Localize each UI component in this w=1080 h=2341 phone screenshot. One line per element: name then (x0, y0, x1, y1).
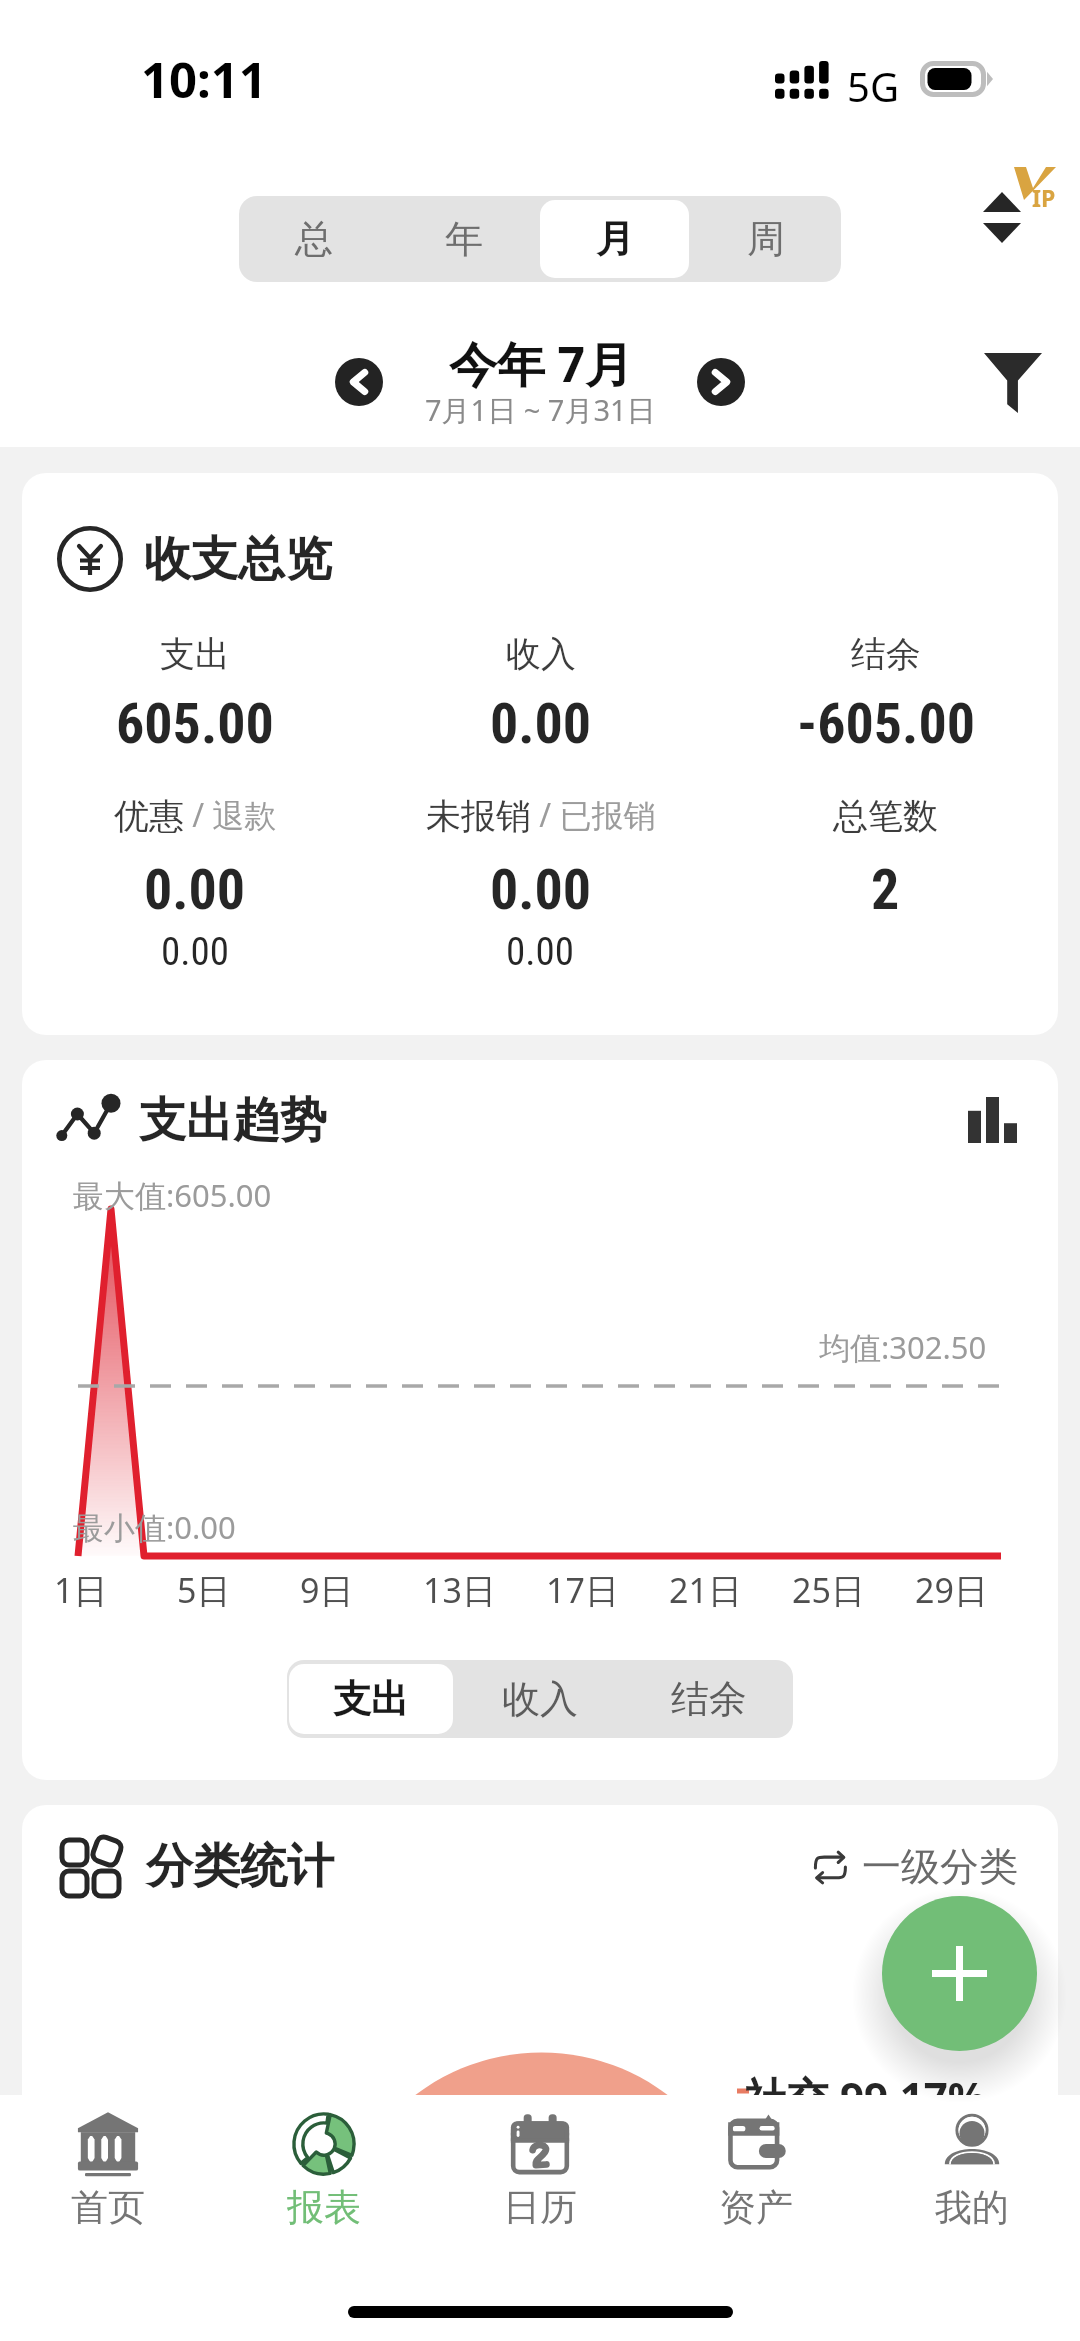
staticText: 结余 (851, 632, 921, 676)
staticText: 周 (747, 215, 785, 263)
button[interactable]: 资产 (648, 2095, 864, 2283)
staticText: 最大值:605.00 (73, 1174, 272, 1216)
staticText: 7月1日 ~ 7月31日 (425, 390, 656, 430)
staticText: 13日 (423, 1567, 496, 1613)
staticText: 日历 (503, 2184, 577, 2231)
staticText: / 已报销 (531, 793, 656, 837)
staticText: 17日 (546, 1567, 619, 1613)
staticText: 0.00 (144, 857, 246, 923)
staticText: 总 (295, 215, 333, 263)
staticText: 1日 (54, 1567, 108, 1613)
staticText: 月 (596, 215, 634, 263)
staticText: 今年 7月 (449, 331, 633, 397)
staticText: 最小值:0.00 (73, 1506, 236, 1548)
staticText: 我的 (935, 2184, 1009, 2231)
staticText: 资产 (719, 2184, 793, 2231)
button[interactable]: 日历 (432, 2095, 648, 2283)
staticText: 分类统计 (146, 1837, 334, 1896)
staticText: 支出 (160, 632, 230, 676)
staticText: 收入 (506, 632, 576, 676)
staticText: / 退款 (184, 793, 277, 837)
staticText: 社交 99.17% (745, 2068, 986, 2095)
button[interactable]: 收入 (457, 1664, 622, 1734)
button[interactable]: Switch to bar chart (956, 1084, 1028, 1156)
staticText: 2 (871, 857, 900, 923)
button[interactable]: 支出 (289, 1664, 453, 1734)
staticText: 10:11 (141, 46, 267, 113)
staticText: 报表 (287, 2184, 361, 2231)
staticText: 一级分类 (862, 1842, 1018, 1891)
button[interactable]: Sort order (940, 160, 1060, 280)
staticText: 首页 (71, 2184, 145, 2231)
button[interactable]: 结余 (626, 1664, 791, 1734)
staticText: 收支总览 (144, 530, 332, 589)
staticText: 21日 (669, 1567, 742, 1613)
staticText: 优惠 (114, 794, 184, 838)
button[interactable]: 报表 (216, 2095, 432, 2283)
button[interactable]: 周 (691, 200, 840, 278)
button[interactable]: Add record (882, 1896, 1037, 2051)
staticText: 25日 (792, 1567, 865, 1613)
staticText: 0.00 (490, 691, 592, 757)
staticText: 0.00 (161, 929, 230, 975)
button[interactable]: 总 (240, 200, 388, 278)
button[interactable]: 首页 (0, 2095, 216, 2283)
staticText: 0.00 (506, 929, 575, 975)
staticText: IP (1032, 182, 1056, 213)
staticText: 29日 (915, 1567, 988, 1613)
staticText: -605.00 (797, 691, 975, 757)
staticText: 支出 (333, 1675, 409, 1723)
staticText: 0.00 (490, 857, 592, 923)
staticText: 5G (847, 59, 899, 113)
staticText: 均值:302.50 (819, 1326, 987, 1368)
staticText: 结余 (671, 1675, 747, 1723)
staticText: 年 (445, 215, 483, 263)
staticText: 未报销 (426, 794, 531, 838)
staticText: 5日 (177, 1567, 231, 1613)
button[interactable]: 一级分类 (805, 1836, 1024, 1897)
button[interactable]: Previous period (335, 358, 383, 406)
staticText: 605.00 (116, 691, 274, 757)
staticText: 支出趋势 (139, 1091, 327, 1150)
button[interactable]: 年 (390, 200, 538, 278)
button[interactable]: Next period (697, 358, 745, 406)
staticText: 9日 (300, 1567, 354, 1613)
staticText: 收入 (502, 1675, 578, 1723)
button[interactable]: 月 (540, 200, 689, 278)
button[interactable]: Filter (958, 328, 1068, 438)
staticText: 总笔数 (833, 794, 938, 838)
button[interactable]: 我的 (864, 2095, 1080, 2283)
